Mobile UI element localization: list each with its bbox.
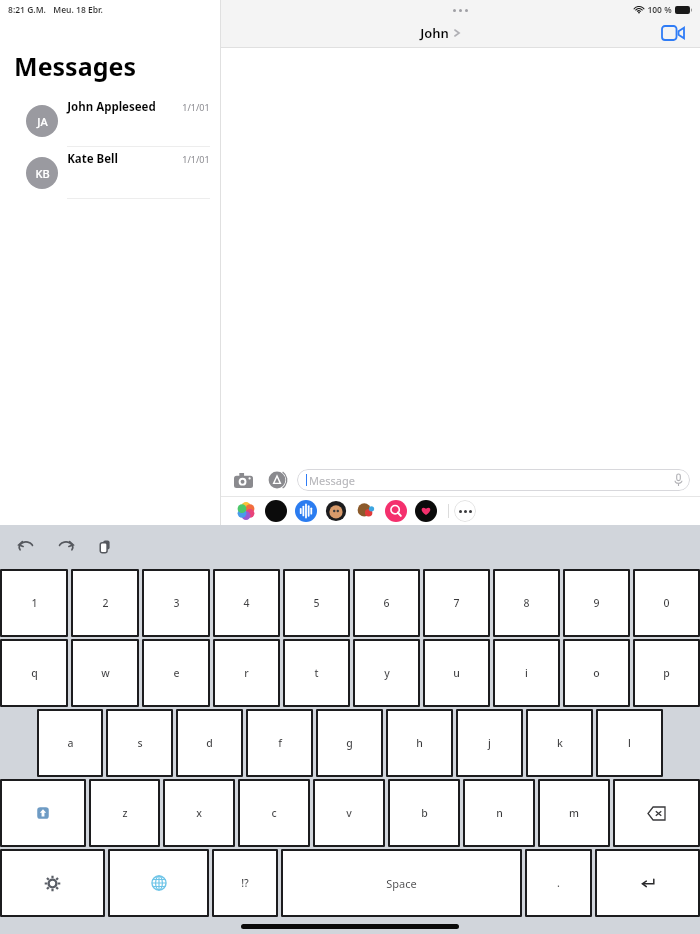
- button[interactable]: Memoji stickers: [353, 498, 379, 524]
- staticText: y: [384, 666, 390, 680]
- button[interactable]: p: [633, 639, 700, 707]
- button[interactable]: .: [525, 849, 592, 917]
- staticText: v: [346, 806, 352, 820]
- button[interactable]: m: [538, 779, 610, 847]
- staticText: j: [488, 736, 491, 750]
- button[interactable]: Undo: [14, 535, 38, 559]
- button[interactable]: k: [526, 709, 593, 777]
- staticText: u: [453, 666, 460, 680]
- staticText: m: [569, 806, 579, 820]
- staticText: Kate Bell: [67, 151, 118, 167]
- button[interactable]: 1: [0, 569, 68, 637]
- staticText: r: [244, 666, 249, 680]
- button[interactable]: f: [246, 709, 313, 777]
- staticText: 5: [313, 596, 320, 610]
- button[interactable]: !?: [212, 849, 278, 917]
- button[interactable]: Space: [281, 849, 522, 917]
- button[interactable]: j: [456, 709, 523, 777]
- staticText: c: [271, 806, 277, 820]
- button[interactable]: v: [313, 779, 385, 847]
- button[interactable]: w: [71, 639, 139, 707]
- button[interactable]: i: [493, 639, 560, 707]
- button[interactable]: 0: [633, 569, 700, 637]
- button[interactable]: o: [563, 639, 630, 707]
- button[interactable]: Audio message: [293, 498, 319, 524]
- button[interactable]: Memoji: [323, 498, 349, 524]
- button[interactable]: 9: [563, 569, 630, 637]
- staticText: Message: [309, 473, 355, 488]
- button[interactable]: y: [353, 639, 420, 707]
- button[interactable]: 2: [71, 569, 139, 637]
- button[interactable]: Backspace: [613, 779, 700, 847]
- staticText: 0: [663, 596, 670, 610]
- staticText: n: [496, 806, 503, 820]
- button[interactable]: App Store: [265, 468, 289, 492]
- button[interactable]: 7: [423, 569, 490, 637]
- button[interactable]: Images: [383, 498, 409, 524]
- button[interactable]: c: [238, 779, 310, 847]
- button[interactable]: d: [176, 709, 243, 777]
- button[interactable]: l: [596, 709, 663, 777]
- staticText: !?: [241, 876, 249, 890]
- button[interactable]: JA: [0, 95, 220, 147]
- staticText: p: [663, 666, 670, 680]
- button[interactable]: s: [106, 709, 173, 777]
- staticText: 2: [102, 596, 109, 610]
- staticText: 4: [243, 596, 250, 610]
- staticText: Space: [386, 876, 417, 891]
- button[interactable]: 8: [493, 569, 560, 637]
- staticText: k: [557, 736, 563, 750]
- button[interactable]: u: [423, 639, 490, 707]
- button[interactable]: Paste: [94, 535, 118, 559]
- staticText: z: [122, 806, 128, 820]
- button[interactable]: 3: [142, 569, 210, 637]
- staticText: o: [593, 666, 600, 680]
- staticText: f: [278, 736, 282, 750]
- staticText: t: [314, 666, 319, 680]
- staticText: l: [628, 736, 631, 750]
- button[interactable]: FaceTime video call: [660, 20, 686, 46]
- staticText: e: [173, 666, 180, 680]
- button[interactable]: q: [0, 639, 68, 707]
- staticText: John Appleseed: [67, 99, 156, 115]
- staticText: Messages: [14, 49, 136, 83]
- button[interactable]: Multitasking: [449, 5, 472, 16]
- staticText: KB: [35, 166, 50, 181]
- button[interactable]: b: [388, 779, 460, 847]
- button[interactable]: Redo: [54, 535, 78, 559]
- staticText: JA: [37, 114, 48, 129]
- button[interactable]: h: [386, 709, 453, 777]
- button[interactable]: Digital Touch: [413, 498, 439, 524]
- button[interactable]: a: [37, 709, 103, 777]
- button[interactable]: r: [213, 639, 280, 707]
- staticText: q: [31, 666, 38, 680]
- staticText: Meu. 18 Ebr.: [53, 4, 103, 16]
- staticText: 9: [593, 596, 600, 610]
- button[interactable]: John: [420, 24, 460, 42]
- staticText: 3: [173, 596, 180, 610]
- button[interactable]: t: [283, 639, 350, 707]
- button[interactable]: KB: [0, 147, 220, 199]
- button[interactable]: Return: [595, 849, 700, 917]
- button[interactable]: 4: [213, 569, 280, 637]
- button[interactable]: n: [463, 779, 535, 847]
- button[interactable]: g: [316, 709, 383, 777]
- button[interactable]: Switch keyboard: [108, 849, 209, 917]
- staticText: .: [557, 876, 560, 890]
- staticText: d: [206, 736, 213, 750]
- staticText: g: [346, 736, 353, 750]
- button[interactable]: Message: [297, 469, 690, 491]
- button[interactable]: Apple Cash: [263, 498, 289, 524]
- button[interactable]: x: [163, 779, 235, 847]
- button[interactable]: Photos: [233, 498, 259, 524]
- button[interactable]: 5: [283, 569, 350, 637]
- button[interactable]: Keyboard settings: [0, 849, 105, 917]
- button[interactable]: 6: [353, 569, 420, 637]
- staticText: 1: [31, 596, 38, 610]
- staticText: h: [416, 736, 423, 750]
- button[interactable]: More apps: [454, 500, 476, 522]
- button[interactable]: Camera: [231, 468, 255, 492]
- button[interactable]: e: [142, 639, 210, 707]
- button[interactable]: Shift: [0, 779, 86, 847]
- button[interactable]: z: [89, 779, 160, 847]
